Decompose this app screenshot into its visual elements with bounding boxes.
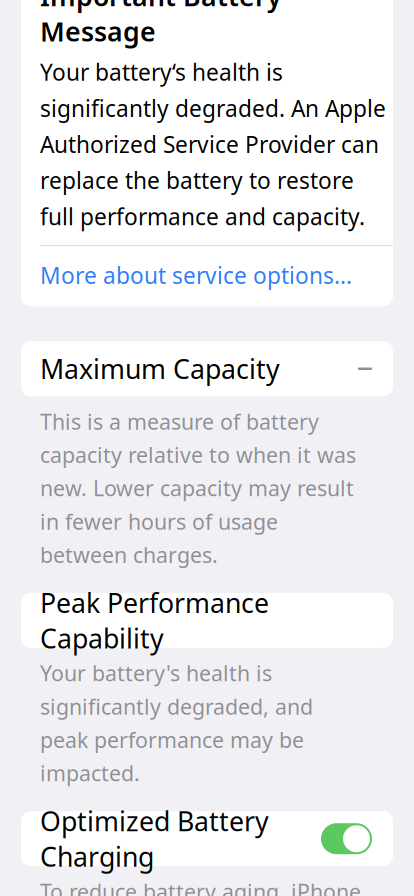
staticText: Optimized Battery Charging	[40, 803, 269, 874]
button[interactable]: More about service options...	[40, 246, 393, 306]
button[interactable]: Peak Performance Capability	[21, 593, 393, 648]
staticText: Important Battery Message	[40, 0, 282, 49]
button[interactable]: Optimized Battery Charging	[21, 811, 393, 866]
button[interactable]: Maximum Capacity	[21, 341, 393, 396]
staticText: Peak Performance Capability	[40, 585, 269, 656]
staticText: Your battery's health is significantly d…	[40, 659, 313, 787]
staticText: Your battery‘s health is significantly d…	[40, 57, 386, 231]
staticText: This is a measure of battery capacity re…	[40, 407, 356, 569]
staticText: To reduce battery aging, iPhone learns f…	[40, 877, 361, 896]
staticText: Maximum Capacity	[40, 351, 280, 386]
staticText: More about service options...	[40, 260, 352, 290]
